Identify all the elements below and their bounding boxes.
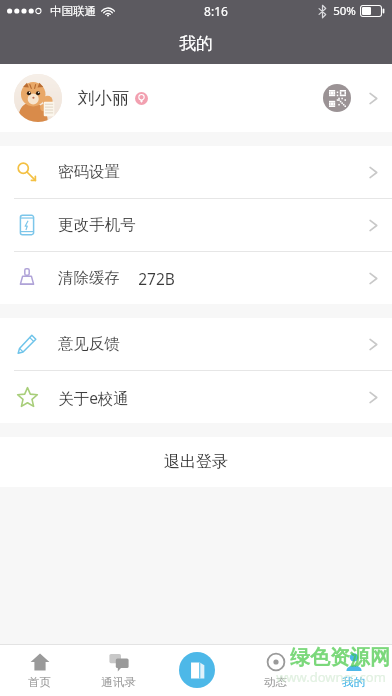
staticText: 退出登录 xyxy=(164,452,228,472)
staticText: 意见反馈 xyxy=(58,334,120,354)
button[interactable]: Book xyxy=(158,644,236,696)
button[interactable]: 刘小丽 xyxy=(0,64,392,132)
staticText: 通讯录 xyxy=(101,675,136,689)
button[interactable]: 通讯录 xyxy=(79,644,158,696)
button[interactable]: 动态 xyxy=(236,644,314,696)
staticText: 272B xyxy=(138,268,175,289)
button[interactable]: 退出登录 xyxy=(0,437,392,487)
staticText: 动态 xyxy=(264,675,287,689)
button[interactable]: 意见反馈 xyxy=(0,318,392,370)
staticText: 绿色资源网 xyxy=(290,645,390,670)
staticText: 清除缓存 xyxy=(58,268,120,288)
staticText: www.downcc.com xyxy=(276,668,386,686)
button[interactable]: 我的 xyxy=(314,644,392,696)
staticText: 我的 xyxy=(342,675,365,689)
button[interactable]: 清除缓存 xyxy=(0,252,392,304)
staticText: 中国联通 xyxy=(50,4,96,18)
staticText: 首页 xyxy=(28,675,51,689)
button[interactable]: 关于e校通 xyxy=(0,371,392,423)
staticText: 50% xyxy=(333,3,356,19)
button[interactable]: 首页 xyxy=(0,644,79,696)
button[interactable]: 更改手机号 xyxy=(0,199,392,251)
staticText: 密码设置 xyxy=(58,162,120,182)
button[interactable]: QR code xyxy=(323,84,351,112)
staticText: 关于e校通 xyxy=(58,387,129,408)
staticText: 更改手机号 xyxy=(58,215,136,235)
staticText: 8:16 xyxy=(204,3,228,19)
staticText: 刘小丽 xyxy=(78,88,129,109)
staticText: 我的 xyxy=(179,33,213,54)
button[interactable]: 密码设置 xyxy=(0,146,392,198)
